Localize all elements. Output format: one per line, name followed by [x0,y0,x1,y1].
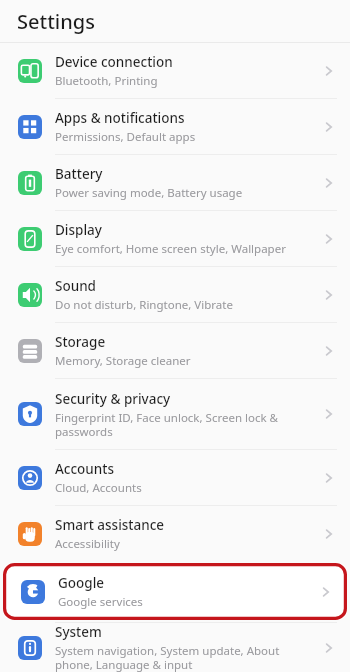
staticText: Sound [55,277,96,295]
staticText: Memory, Storage cleaner [55,353,191,369]
staticText: Security & privacy [55,390,171,408]
button[interactable]: Apps & notifications [0,99,350,154]
staticText: System [55,623,102,641]
staticText: Smart assistance [55,516,165,534]
button[interactable]: System [0,623,350,672]
button[interactable]: Smart assistance [0,506,350,561]
button[interactable]: Battery [0,155,350,210]
staticText: Power saving mode, Battery usage [55,185,243,201]
staticText: Fingerprint ID, Face unlock, Screen lock… [55,410,278,439]
button[interactable]: Sound [0,267,350,322]
staticText: Display [55,221,102,239]
staticText: Eye comfort, Home screen style, Wallpape… [55,241,286,257]
button[interactable]: Security & privacy [0,379,350,449]
staticText: Permissions, Default apps [55,129,196,145]
staticText: System navigation, System update, About … [55,643,280,672]
button[interactable]: Google [3,563,347,620]
staticText: Do not disturb, Ringtone, Vibrate [55,297,233,313]
button[interactable]: Accounts [0,450,350,505]
button[interactable]: Storage [0,323,350,378]
staticText: Settings [17,8,95,35]
staticText: Device connection [55,53,173,71]
staticText: Bluetooth, Printing [55,73,158,89]
button[interactable]: Device connection [0,43,350,98]
staticText: Storage [55,333,106,351]
staticText: Cloud, Accounts [55,480,142,496]
button[interactable]: Display [0,211,350,266]
staticText: Accessibility [55,536,120,552]
staticText: Google services [58,594,143,610]
staticText: Accounts [55,460,115,478]
staticText: Apps & notifications [55,109,185,127]
staticText: Battery [55,165,103,183]
staticText: Google [58,574,105,592]
